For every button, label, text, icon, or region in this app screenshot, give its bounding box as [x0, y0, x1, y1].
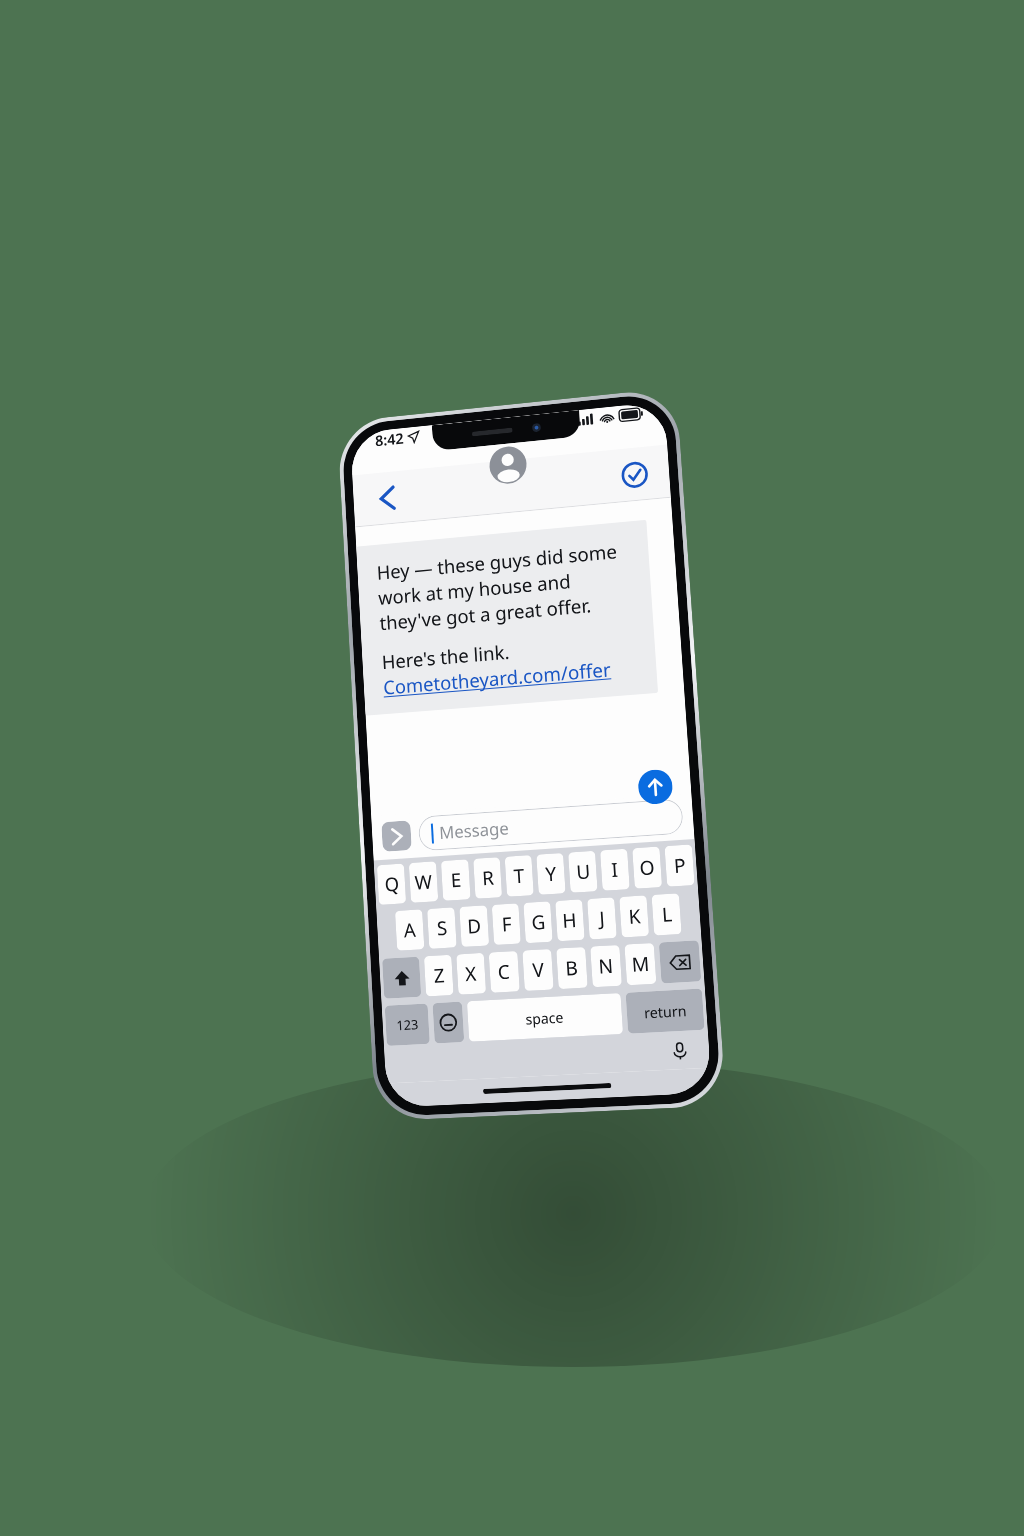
staticText: K — [628, 903, 642, 930]
staticText: R — [481, 864, 495, 891]
button[interactable]: Show apps — [381, 820, 412, 852]
staticText: C — [497, 958, 511, 985]
staticText: Message — [438, 816, 509, 844]
staticText: B — [565, 954, 579, 982]
button[interactable]: space — [467, 993, 623, 1042]
button[interactable]: Message — [418, 798, 684, 851]
staticText: Y — [545, 860, 557, 887]
staticText: Q — [384, 871, 400, 898]
staticText: G — [531, 909, 546, 936]
staticText: V — [532, 956, 545, 983]
button[interactable]: Contact — [488, 445, 528, 485]
button[interactable]: L — [651, 893, 682, 936]
staticText: S — [436, 915, 448, 941]
staticText: U — [575, 858, 591, 885]
staticText: O — [639, 854, 656, 881]
staticText: P — [673, 852, 687, 879]
staticText: X — [464, 960, 478, 987]
staticText: W — [414, 869, 433, 896]
button[interactable]: Q — [377, 863, 406, 905]
staticText: D — [467, 913, 482, 940]
staticText: J — [599, 905, 606, 932]
staticText: I — [610, 856, 619, 883]
staticText: Z — [433, 962, 445, 989]
button[interactable]: B — [556, 947, 588, 989]
button[interactable]: Cometotheyard.com/offer — [383, 656, 612, 700]
staticText: N — [598, 952, 614, 980]
button[interactable]: Back — [370, 480, 404, 516]
button[interactable]: J — [587, 897, 617, 939]
button[interactable]: S — [427, 907, 457, 949]
button[interactable]: 123 — [385, 1003, 430, 1046]
button[interactable]: Shift — [382, 957, 421, 999]
staticText: L — [661, 901, 673, 928]
button[interactable]: E — [441, 859, 471, 901]
button[interactable]: K — [619, 895, 649, 937]
button[interactable]: Hey — these guys did some work at my hou… — [356, 520, 658, 716]
staticText: 8:42 — [374, 428, 404, 450]
button[interactable]: Verified — [616, 456, 652, 493]
button[interactable]: H — [555, 899, 585, 941]
button[interactable]: X — [456, 953, 486, 995]
staticText: M — [631, 950, 651, 978]
button[interactable]: C — [489, 951, 520, 993]
button[interactable]: U — [568, 851, 598, 893]
staticText: H — [562, 907, 578, 934]
staticText: 123 — [396, 1015, 419, 1034]
button[interactable]: return — [625, 988, 705, 1034]
button[interactable]: N — [590, 945, 622, 987]
button[interactable]: T — [505, 855, 534, 897]
button[interactable]: D — [459, 905, 489, 947]
staticText: Hey — these guys did some work at my hou… — [376, 537, 637, 636]
staticText: Here's the link. — [381, 639, 511, 675]
staticText: A — [403, 917, 417, 943]
staticText: F — [501, 911, 512, 938]
button[interactable]: Send — [637, 768, 674, 805]
button[interactable]: M — [624, 943, 656, 985]
staticText: E — [450, 867, 462, 893]
button[interactable]: Dictation — [666, 1038, 692, 1064]
button[interactable]: G — [523, 901, 553, 943]
button[interactable]: F — [492, 903, 521, 945]
staticText: space — [525, 1007, 564, 1029]
staticText: return — [643, 1001, 688, 1022]
button[interactable]: Emoji — [432, 1002, 464, 1044]
button[interactable]: Delete — [659, 940, 701, 983]
button[interactable]: A — [395, 909, 424, 951]
button[interactable]: I — [600, 849, 630, 891]
staticText: T — [513, 862, 525, 889]
button[interactable]: V — [522, 949, 554, 991]
button[interactable]: O — [632, 846, 662, 889]
button[interactable]: Y — [536, 853, 566, 895]
button[interactable]: P — [664, 844, 695, 887]
button[interactable]: Z — [424, 955, 454, 996]
button[interactable]: R — [473, 857, 502, 899]
button[interactable]: W — [409, 861, 438, 903]
